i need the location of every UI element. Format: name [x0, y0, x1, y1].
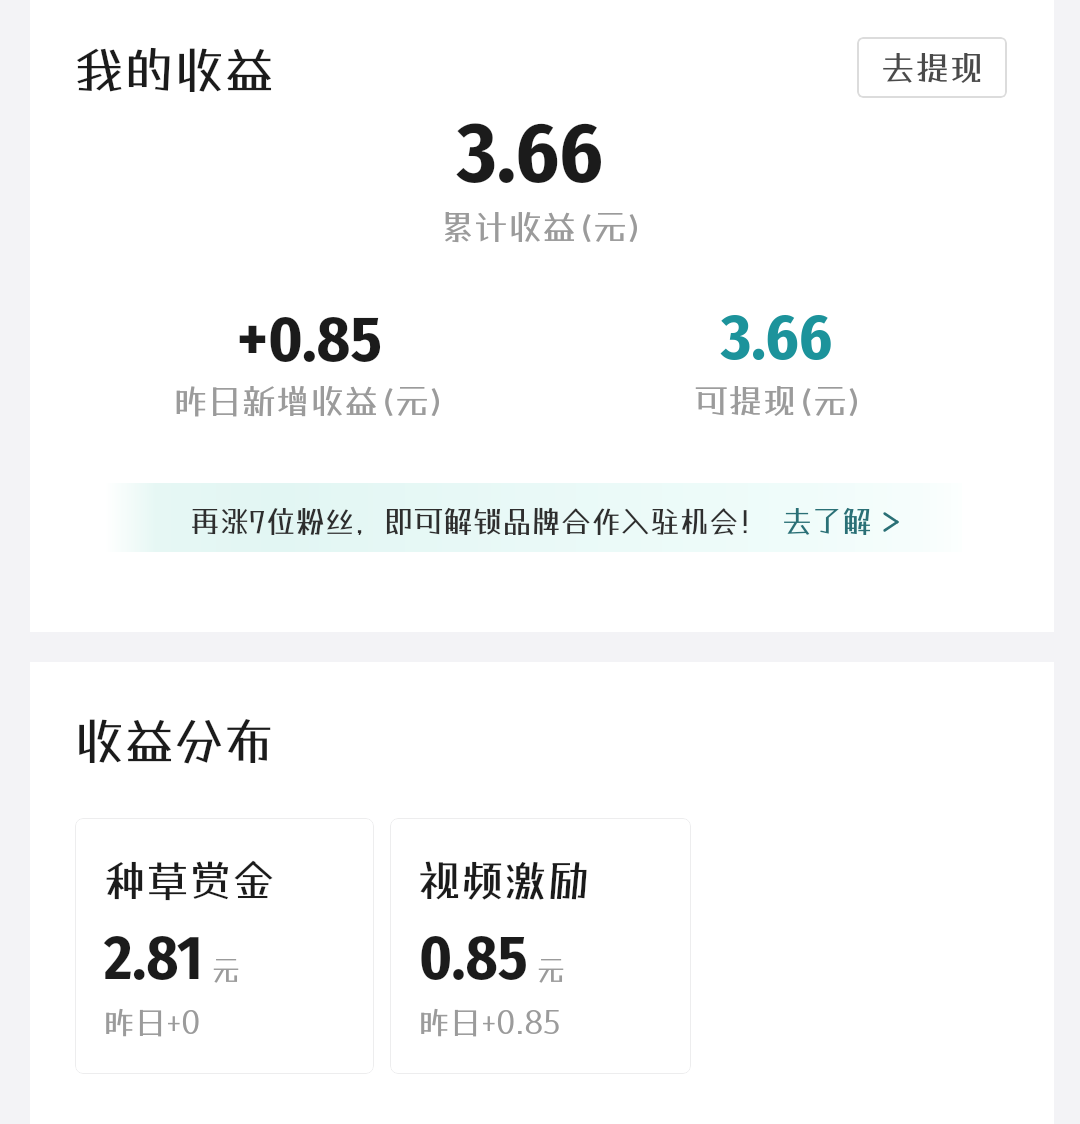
other: 查看详情 [882, 507, 900, 537]
staticText: 可提现(元) [694, 381, 864, 421]
button[interactable]: 去提现 [857, 37, 1007, 98]
staticText: 2.81 [104, 922, 203, 995]
button[interactable]: 再涨7位粉丝，即可解锁品牌合作入驻机会！ [105, 483, 962, 552]
staticText: 再涨7位粉丝，即可解锁品牌合作入驻机会！ [190, 504, 768, 539]
staticText: 收益分布 [74, 711, 274, 770]
staticText: 去了解 [782, 504, 872, 539]
staticText: 昨日+0 [104, 1004, 200, 1041]
staticText: +0.85 [237, 301, 382, 378]
staticText: 元 [537, 954, 566, 987]
staticText: 3.66 [457, 103, 603, 204]
staticText: 种草赏金 [103, 855, 275, 906]
staticText: 我的收益 [74, 40, 274, 99]
button[interactable]: 种草赏金 [75, 818, 374, 1074]
staticText: 去提现 [881, 48, 983, 88]
button[interactable]: 视频激励 [390, 818, 691, 1074]
staticText: 元 [212, 954, 241, 987]
staticText: 3.66 [721, 299, 833, 376]
staticText: 视频激励 [418, 855, 590, 906]
staticText: 昨日+0.85 [419, 1004, 561, 1041]
staticText: 0.85 [419, 922, 528, 995]
staticText: 累计收益(元) [440, 207, 644, 247]
button[interactable]: 去了解 [782, 504, 900, 539]
staticText: 昨日新增收益(元) [174, 381, 446, 421]
